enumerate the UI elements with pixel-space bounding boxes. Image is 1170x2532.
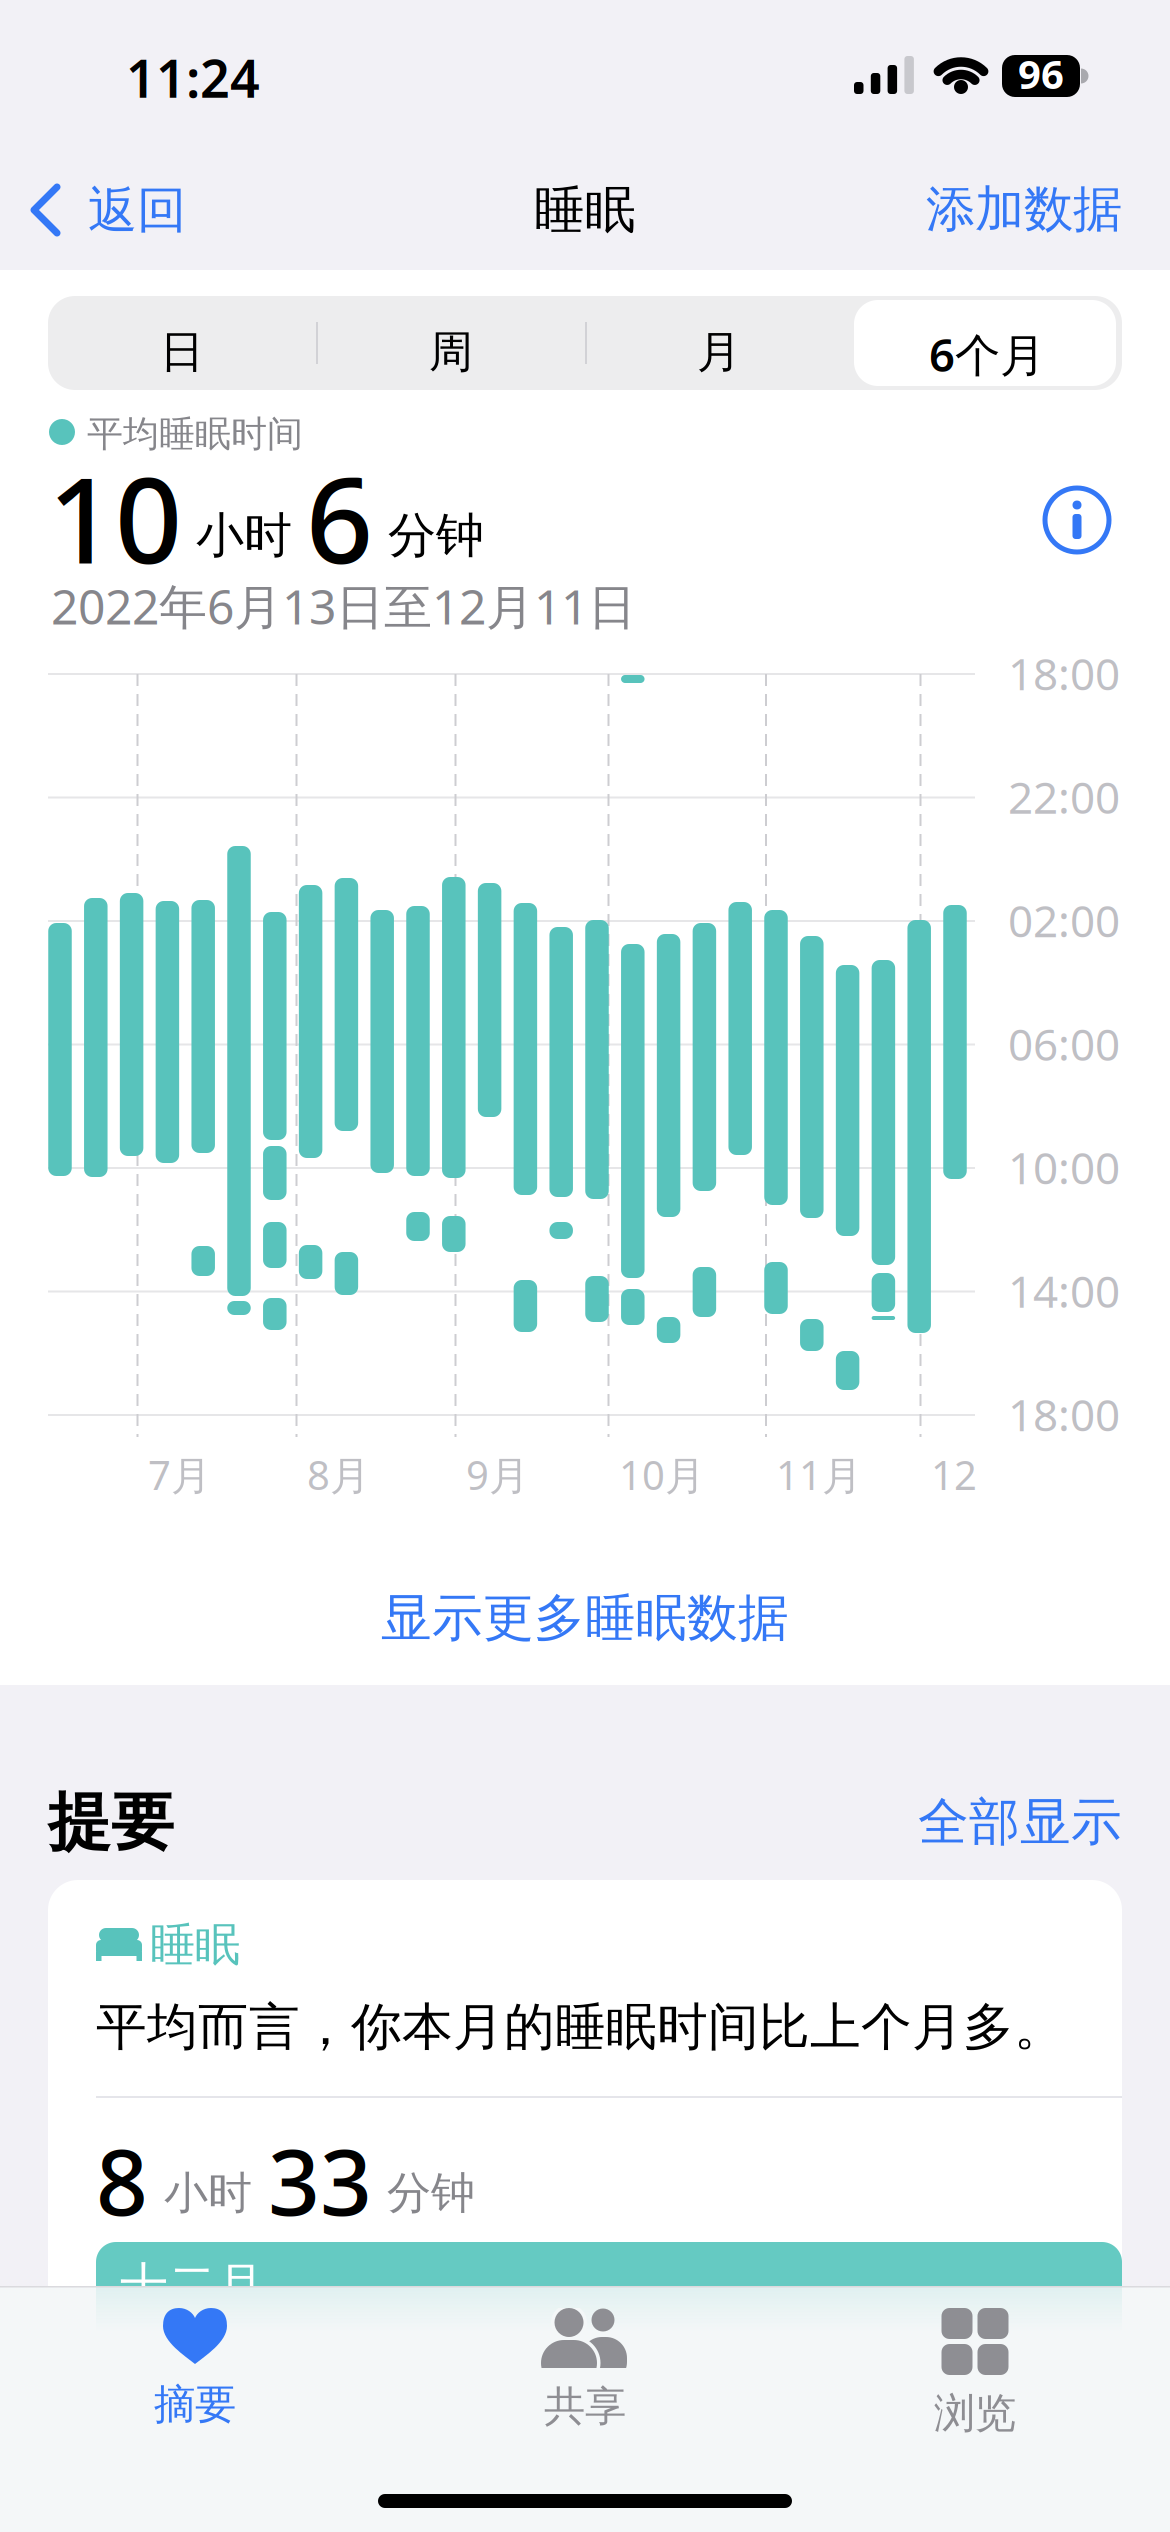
staticText: 浏览 [934, 2388, 1016, 2439]
staticText: 18:00 [1008, 1385, 1120, 1443]
staticText: 8月 [307, 1448, 370, 1501]
staticText: 添加数据 [926, 179, 1122, 240]
button[interactable]: 共享 [390, 2308, 780, 2432]
staticText: 11:24 [126, 43, 260, 112]
staticText: 月 [697, 325, 741, 379]
staticText: 14:00 [1008, 1261, 1120, 1320]
staticText: 33 [268, 2120, 372, 2240]
button[interactable]: 日 [48, 296, 316, 390]
staticText: 10月 [619, 1448, 705, 1501]
staticText: 11月 [776, 1448, 862, 1501]
staticText: 睡眠 [534, 179, 636, 241]
staticText: 22:00 [1008, 767, 1120, 826]
button[interactable]: 6个月 [853, 296, 1121, 390]
staticText: 分钟 [387, 2166, 475, 2220]
staticText: 2022年6月13日至12月11日 [51, 574, 636, 638]
staticText: 提要 [48, 1784, 174, 1861]
button[interactable]: 周 [317, 296, 585, 390]
staticText: 平均睡眠时间 [87, 412, 303, 456]
button[interactable]: 返回 [30, 180, 200, 240]
staticText: 10:00 [1008, 1138, 1120, 1196]
staticText: 06:00 [1008, 1014, 1120, 1073]
staticText: 分钟 [388, 506, 484, 565]
staticText: 共享 [544, 2381, 626, 2432]
button[interactable]: 摘要 [0, 2308, 390, 2430]
button[interactable]: 添加数据 [926, 179, 1122, 240]
button[interactable]: 显示更多睡眠数据 [381, 1587, 789, 1649]
staticText: 小时 [164, 2166, 252, 2220]
staticText: 小时 [196, 506, 292, 565]
staticText: 睡眠 [150, 1917, 240, 1973]
staticText: 02:00 [1008, 891, 1120, 949]
staticText: 6 [306, 440, 373, 596]
staticText: 12 [931, 1448, 977, 1501]
staticText: 返回 [88, 180, 186, 241]
staticText: 日 [160, 325, 204, 379]
staticText: 9月 [466, 1448, 529, 1501]
staticText: 96 [1018, 47, 1064, 100]
button[interactable]: 全部显示 [918, 1791, 1122, 1853]
staticText: 周 [429, 325, 473, 379]
staticText: 6个月 [929, 324, 1045, 384]
staticText: 十二月 [120, 2256, 264, 2315]
staticText: 平均而言，你本月的睡眠时间比上个月多。 [96, 1996, 1065, 2058]
staticText: 8 [96, 2120, 148, 2240]
staticText: 7月 [148, 1448, 211, 1501]
button[interactable]: 浏览 [780, 2308, 1170, 2439]
staticText: 10 [48, 440, 182, 596]
staticText: 摘要 [154, 2379, 236, 2430]
staticText: 18:00 [1008, 644, 1120, 702]
staticText: 全部显示 [918, 1791, 1122, 1853]
button[interactable]: 睡眠摘要 [48, 1880, 1122, 2400]
button[interactable]: 月 [585, 296, 853, 390]
button[interactable]: 关于此数据 [1042, 485, 1112, 555]
staticText: 显示更多睡眠数据 [381, 1587, 789, 1649]
